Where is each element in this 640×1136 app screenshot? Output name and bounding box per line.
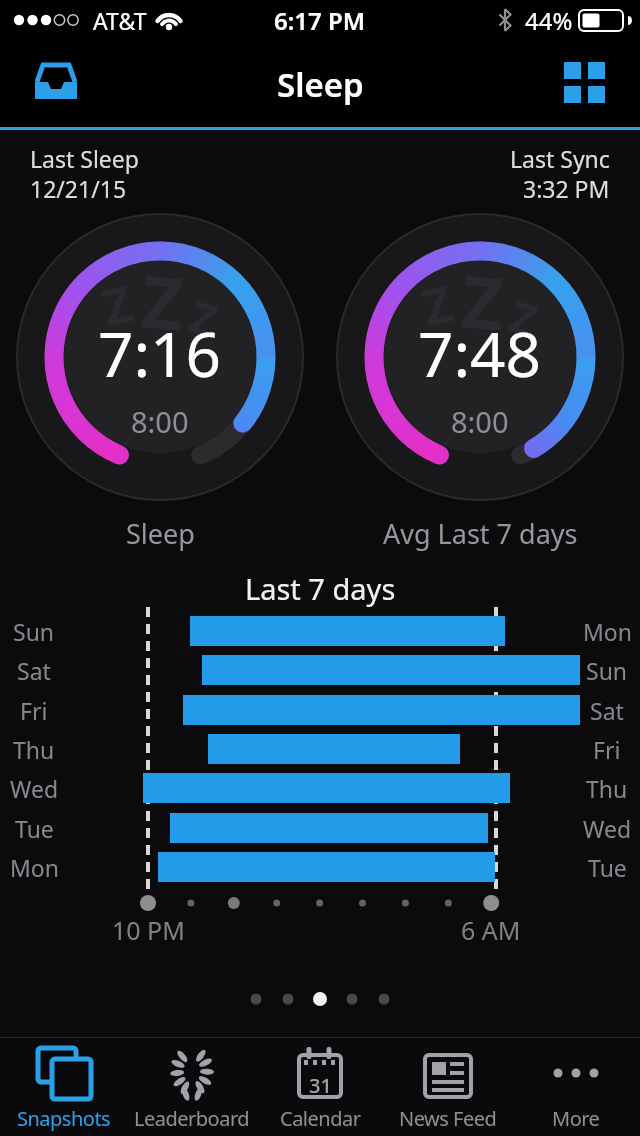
staticText: Mon bbox=[583, 616, 632, 647]
staticText: Tue bbox=[15, 813, 54, 844]
staticText: Last 7 days bbox=[245, 569, 396, 608]
staticText: 7:48 bbox=[418, 311, 542, 395]
staticText: 44% bbox=[525, 4, 573, 37]
staticText: 6:17 PM bbox=[274, 4, 366, 37]
staticText: Snapshots bbox=[17, 1105, 111, 1132]
staticText: 3:32 PM bbox=[523, 173, 610, 204]
button[interactable]: More bbox=[512, 1037, 640, 1136]
staticText: AT&T bbox=[93, 5, 147, 36]
staticText: Sun bbox=[586, 655, 628, 686]
button[interactable]: News Feed bbox=[384, 1037, 512, 1136]
staticText: Tue bbox=[588, 852, 627, 883]
staticText: 8:00 bbox=[131, 402, 189, 441]
staticText: Fri bbox=[593, 734, 621, 765]
button[interactable]: Snapshots bbox=[0, 1037, 128, 1136]
staticText: Wed bbox=[10, 773, 59, 804]
staticText: 6 AM bbox=[461, 913, 521, 947]
staticText: Last Sleep bbox=[30, 143, 139, 174]
staticText: Z bbox=[183, 286, 225, 350]
staticText: Sat bbox=[590, 695, 624, 726]
button[interactable] bbox=[20, 50, 90, 120]
staticText: News Feed bbox=[399, 1105, 497, 1132]
staticText: 10 PM bbox=[112, 913, 185, 947]
staticText: More bbox=[552, 1105, 600, 1132]
staticText: 7:16 bbox=[98, 311, 222, 395]
staticText: Z bbox=[459, 251, 507, 351]
staticText: 8:00 bbox=[451, 402, 509, 441]
staticText: Avg Last 7 days bbox=[383, 515, 578, 552]
staticText: Sleep bbox=[126, 515, 195, 552]
staticText: Mon bbox=[10, 852, 59, 883]
button[interactable]: Leaderboard bbox=[128, 1037, 256, 1136]
staticText: Sleep bbox=[277, 62, 364, 107]
staticText: Z bbox=[95, 268, 140, 341]
staticText: Sat bbox=[17, 655, 51, 686]
staticText: Leaderboard bbox=[134, 1105, 250, 1132]
staticText: Fri bbox=[20, 695, 48, 726]
staticText: Z bbox=[139, 251, 187, 351]
staticText: Thu bbox=[13, 734, 55, 765]
button[interactable] bbox=[550, 48, 620, 118]
staticText: 12/21/15 bbox=[30, 173, 127, 204]
staticText: Z bbox=[503, 286, 545, 350]
staticText: 31 bbox=[309, 1072, 332, 1099]
staticText: Sun bbox=[13, 616, 55, 647]
staticText: Thu bbox=[586, 773, 628, 804]
staticText: Wed bbox=[583, 813, 632, 844]
staticText: Last Sync bbox=[510, 143, 610, 174]
staticText: Z bbox=[415, 268, 460, 341]
button[interactable]: 31 bbox=[256, 1037, 384, 1136]
staticText: Calendar bbox=[280, 1105, 361, 1132]
